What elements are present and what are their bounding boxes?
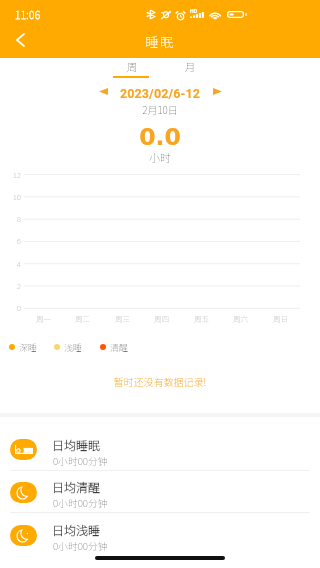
staticText: 周四: [142, 313, 181, 324]
staticText: 深睡: [19, 341, 38, 352]
staticText: 8: [5, 213, 21, 225]
staticText: 10: [5, 191, 21, 203]
button[interactable]: 月: [172, 59, 208, 78]
staticText: 0小时00分钟: [53, 454, 213, 468]
staticText: 0: [5, 302, 21, 314]
staticText: 0小时00分钟: [53, 496, 213, 510]
button[interactable]: 日均睡眠: [0, 417, 320, 471]
staticText: 2月10日: [0, 102, 320, 116]
staticText: 6: [5, 235, 21, 247]
staticText: 11:06: [15, 7, 75, 22]
staticText: 12: [5, 169, 21, 181]
button[interactable]: 日均清醒: [0, 471, 320, 513]
staticText: 日均睡眠: [52, 436, 212, 453]
staticText: 睡眠: [0, 32, 320, 51]
staticText: 周三: [103, 313, 142, 324]
button[interactable]: Previous week: [93, 82, 113, 100]
staticText: 清醒: [110, 341, 129, 352]
staticText: 日均浅睡: [52, 521, 212, 538]
staticText: 周: [114, 59, 150, 74]
button[interactable]: 日均浅睡: [0, 513, 320, 555]
staticText: 周五: [182, 313, 221, 324]
staticText: 4: [5, 258, 21, 270]
staticText: 周一: [24, 313, 63, 324]
button[interactable]: Next week: [207, 82, 227, 100]
staticText: 暂时还没有数据记录!: [0, 374, 320, 388]
button[interactable]: Back: [8, 28, 32, 52]
staticText: 小时: [0, 149, 320, 165]
staticText: 周二: [63, 313, 102, 324]
staticText: 2023/02/6-12: [0, 86, 320, 101]
button[interactable]: 周: [114, 59, 150, 78]
staticText: 周六: [221, 313, 260, 324]
staticText: 日均清醒: [52, 478, 212, 495]
staticText: 周日: [261, 313, 300, 324]
staticText: 浅睡: [64, 341, 83, 352]
staticText: HD: [190, 8, 202, 14]
staticText: 月: [172, 59, 208, 74]
staticText: 0小时00分钟: [53, 539, 213, 553]
staticText: 0.0: [0, 123, 320, 150]
staticText: 2: [5, 280, 21, 292]
